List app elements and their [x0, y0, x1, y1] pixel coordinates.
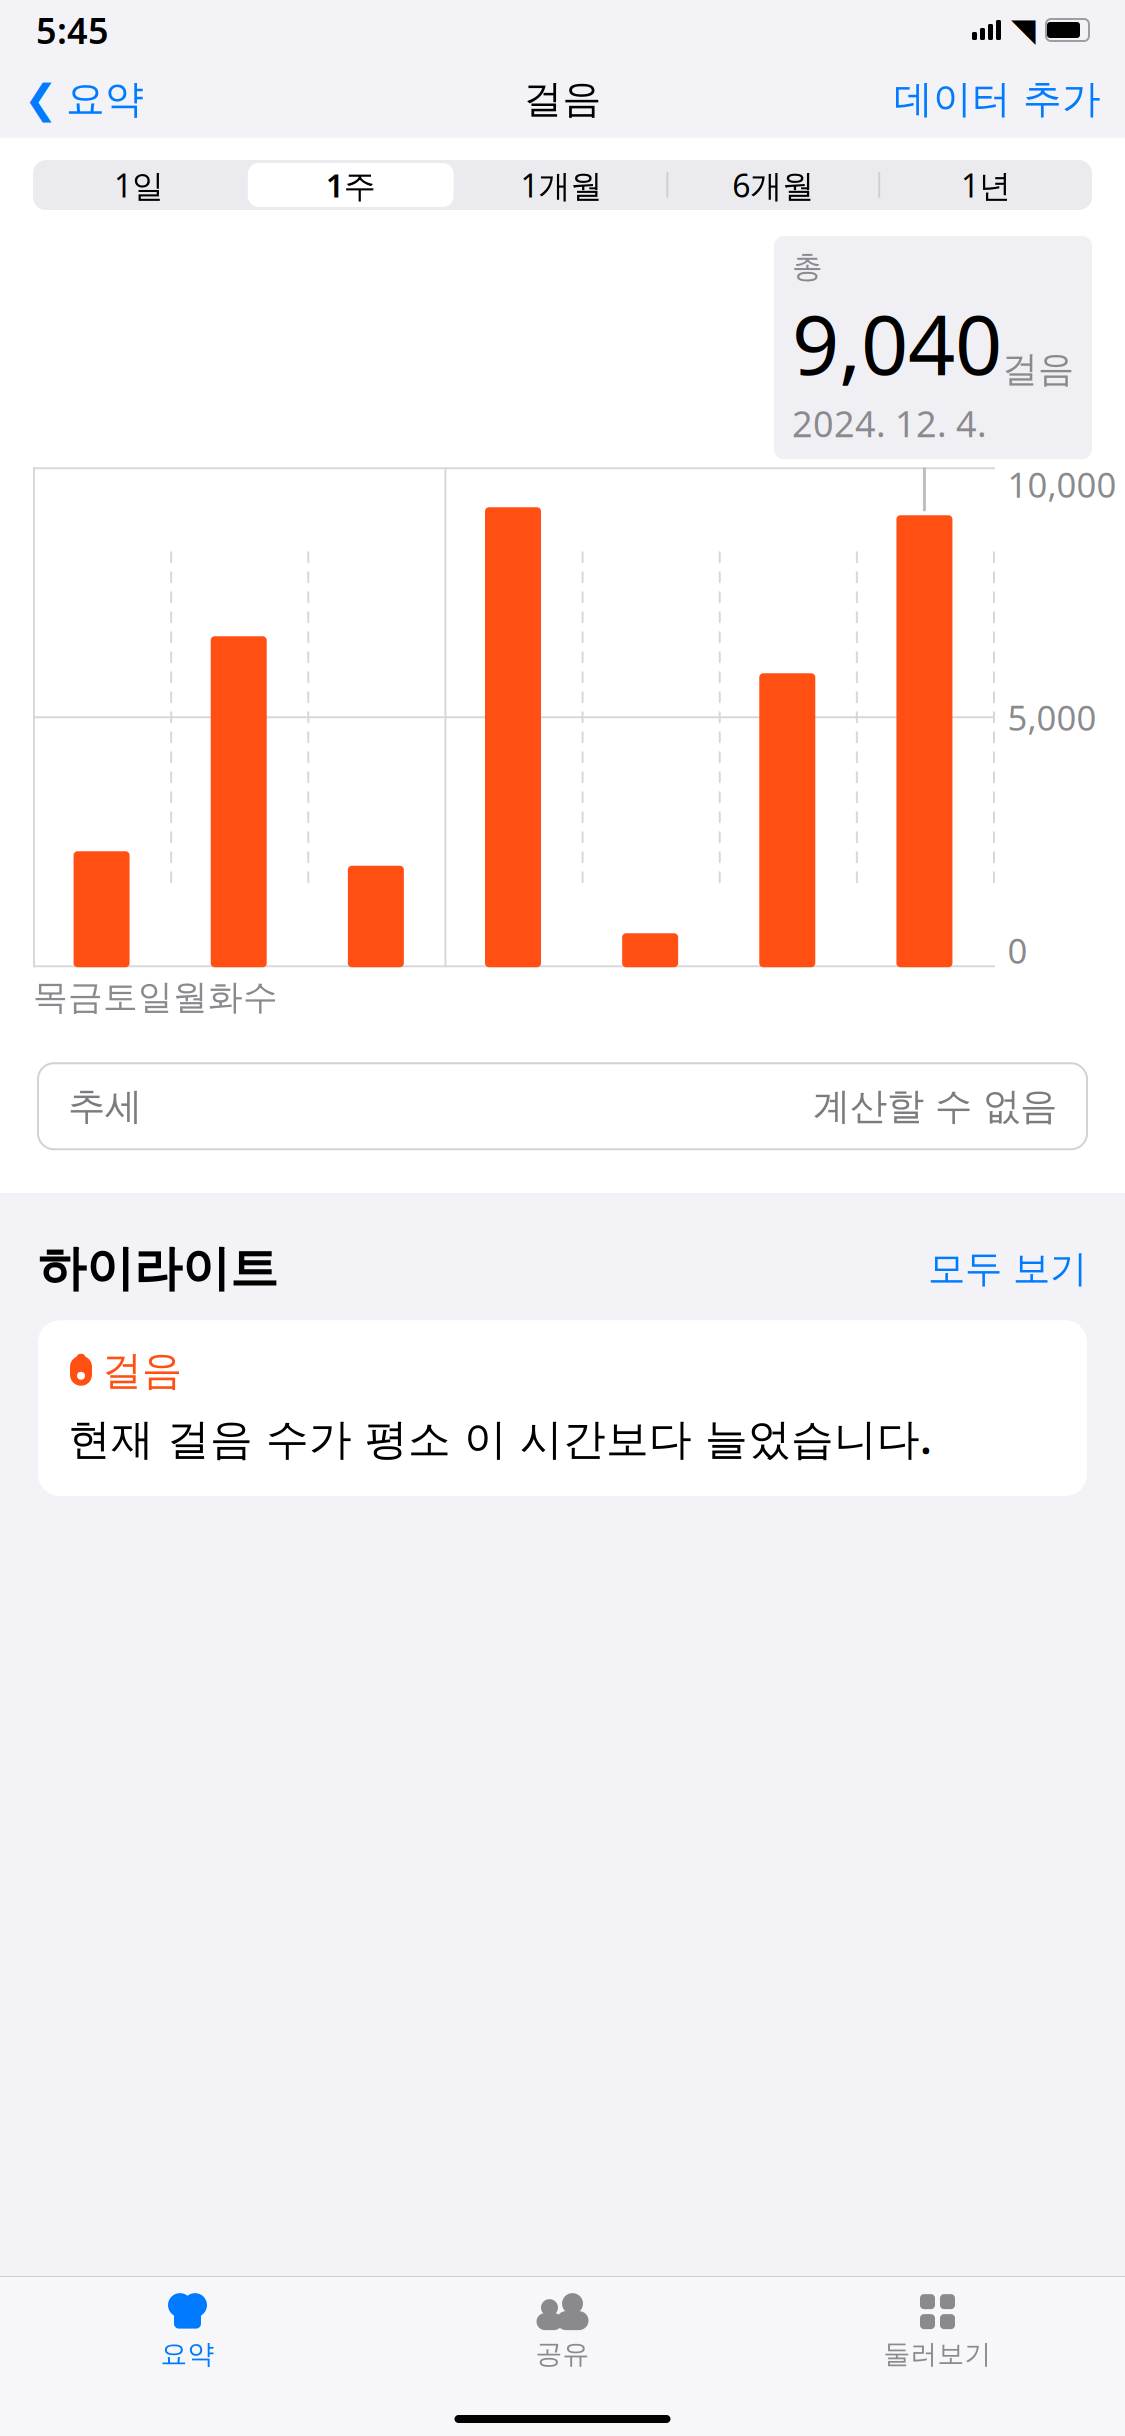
staticText: 토 — [103, 976, 138, 1019]
staticText: 계산할 수 없음 — [813, 1083, 1057, 1129]
staticText: 6개월 — [732, 164, 814, 206]
staticText: ❮ — [24, 76, 58, 122]
staticText: 1일 — [114, 164, 164, 206]
staticText: 일 — [138, 976, 173, 1019]
button[interactable]: 1년 — [880, 160, 1092, 210]
staticText: 공유 — [535, 2338, 589, 2370]
staticText: 0 — [1007, 927, 1027, 973]
staticText: 둘러보기 — [883, 2338, 991, 2370]
staticText: 1년 — [961, 164, 1011, 206]
staticText: 1개월 — [520, 164, 602, 206]
staticText: ◥ — [1011, 12, 1036, 48]
staticText: 2024. 12. 4. — [792, 399, 987, 447]
staticText: 데이터 추가 — [894, 75, 1101, 123]
staticText: 목 — [33, 976, 68, 1019]
staticText: 금 — [68, 976, 103, 1019]
staticText: 모두 보기 — [928, 1246, 1087, 1292]
button[interactable]: 1주 — [245, 160, 457, 210]
staticText: 추세 — [68, 1083, 142, 1129]
staticText: 현재 걸음 수가 평소 이 시간보다 늘었습니다. — [68, 1409, 932, 1466]
button[interactable]: 걸음 — [38, 1320, 1087, 1496]
staticText: 5,000 — [1007, 694, 1096, 740]
button[interactable]: 6개월 — [668, 160, 880, 210]
staticText: 걸음 — [102, 1346, 182, 1395]
staticText: 10,000 — [1007, 461, 1116, 507]
staticText: 요약 — [66, 75, 144, 123]
button[interactable]: 1일 — [33, 160, 245, 210]
button[interactable]: 데이터 추가 — [894, 67, 1101, 131]
staticText: 1주 — [326, 164, 376, 206]
button[interactable]: 1개월 — [457, 160, 668, 210]
staticText: 9,040 — [792, 288, 1002, 397]
staticText: 화 — [208, 976, 243, 1019]
staticText: 총 — [792, 248, 823, 286]
staticText: 걸음 — [1002, 347, 1074, 391]
staticText: 수 — [243, 976, 278, 1019]
button[interactable]: 추세 — [38, 1063, 1087, 1149]
staticText: 걸음 — [523, 75, 601, 123]
button[interactable]: 공유 — [375, 2280, 750, 2370]
button[interactable]: ❮ — [24, 67, 144, 131]
button[interactable]: 요약 — [0, 2280, 375, 2370]
staticText: 월 — [173, 976, 208, 1019]
button[interactable]: 모두 보기 — [928, 1240, 1087, 1298]
button[interactable]: 둘러보기 — [750, 2280, 1125, 2370]
staticText: 요약 — [160, 2338, 214, 2370]
staticText: 하이라이트 — [38, 1239, 278, 1298]
staticText: 5:45 — [36, 6, 109, 54]
